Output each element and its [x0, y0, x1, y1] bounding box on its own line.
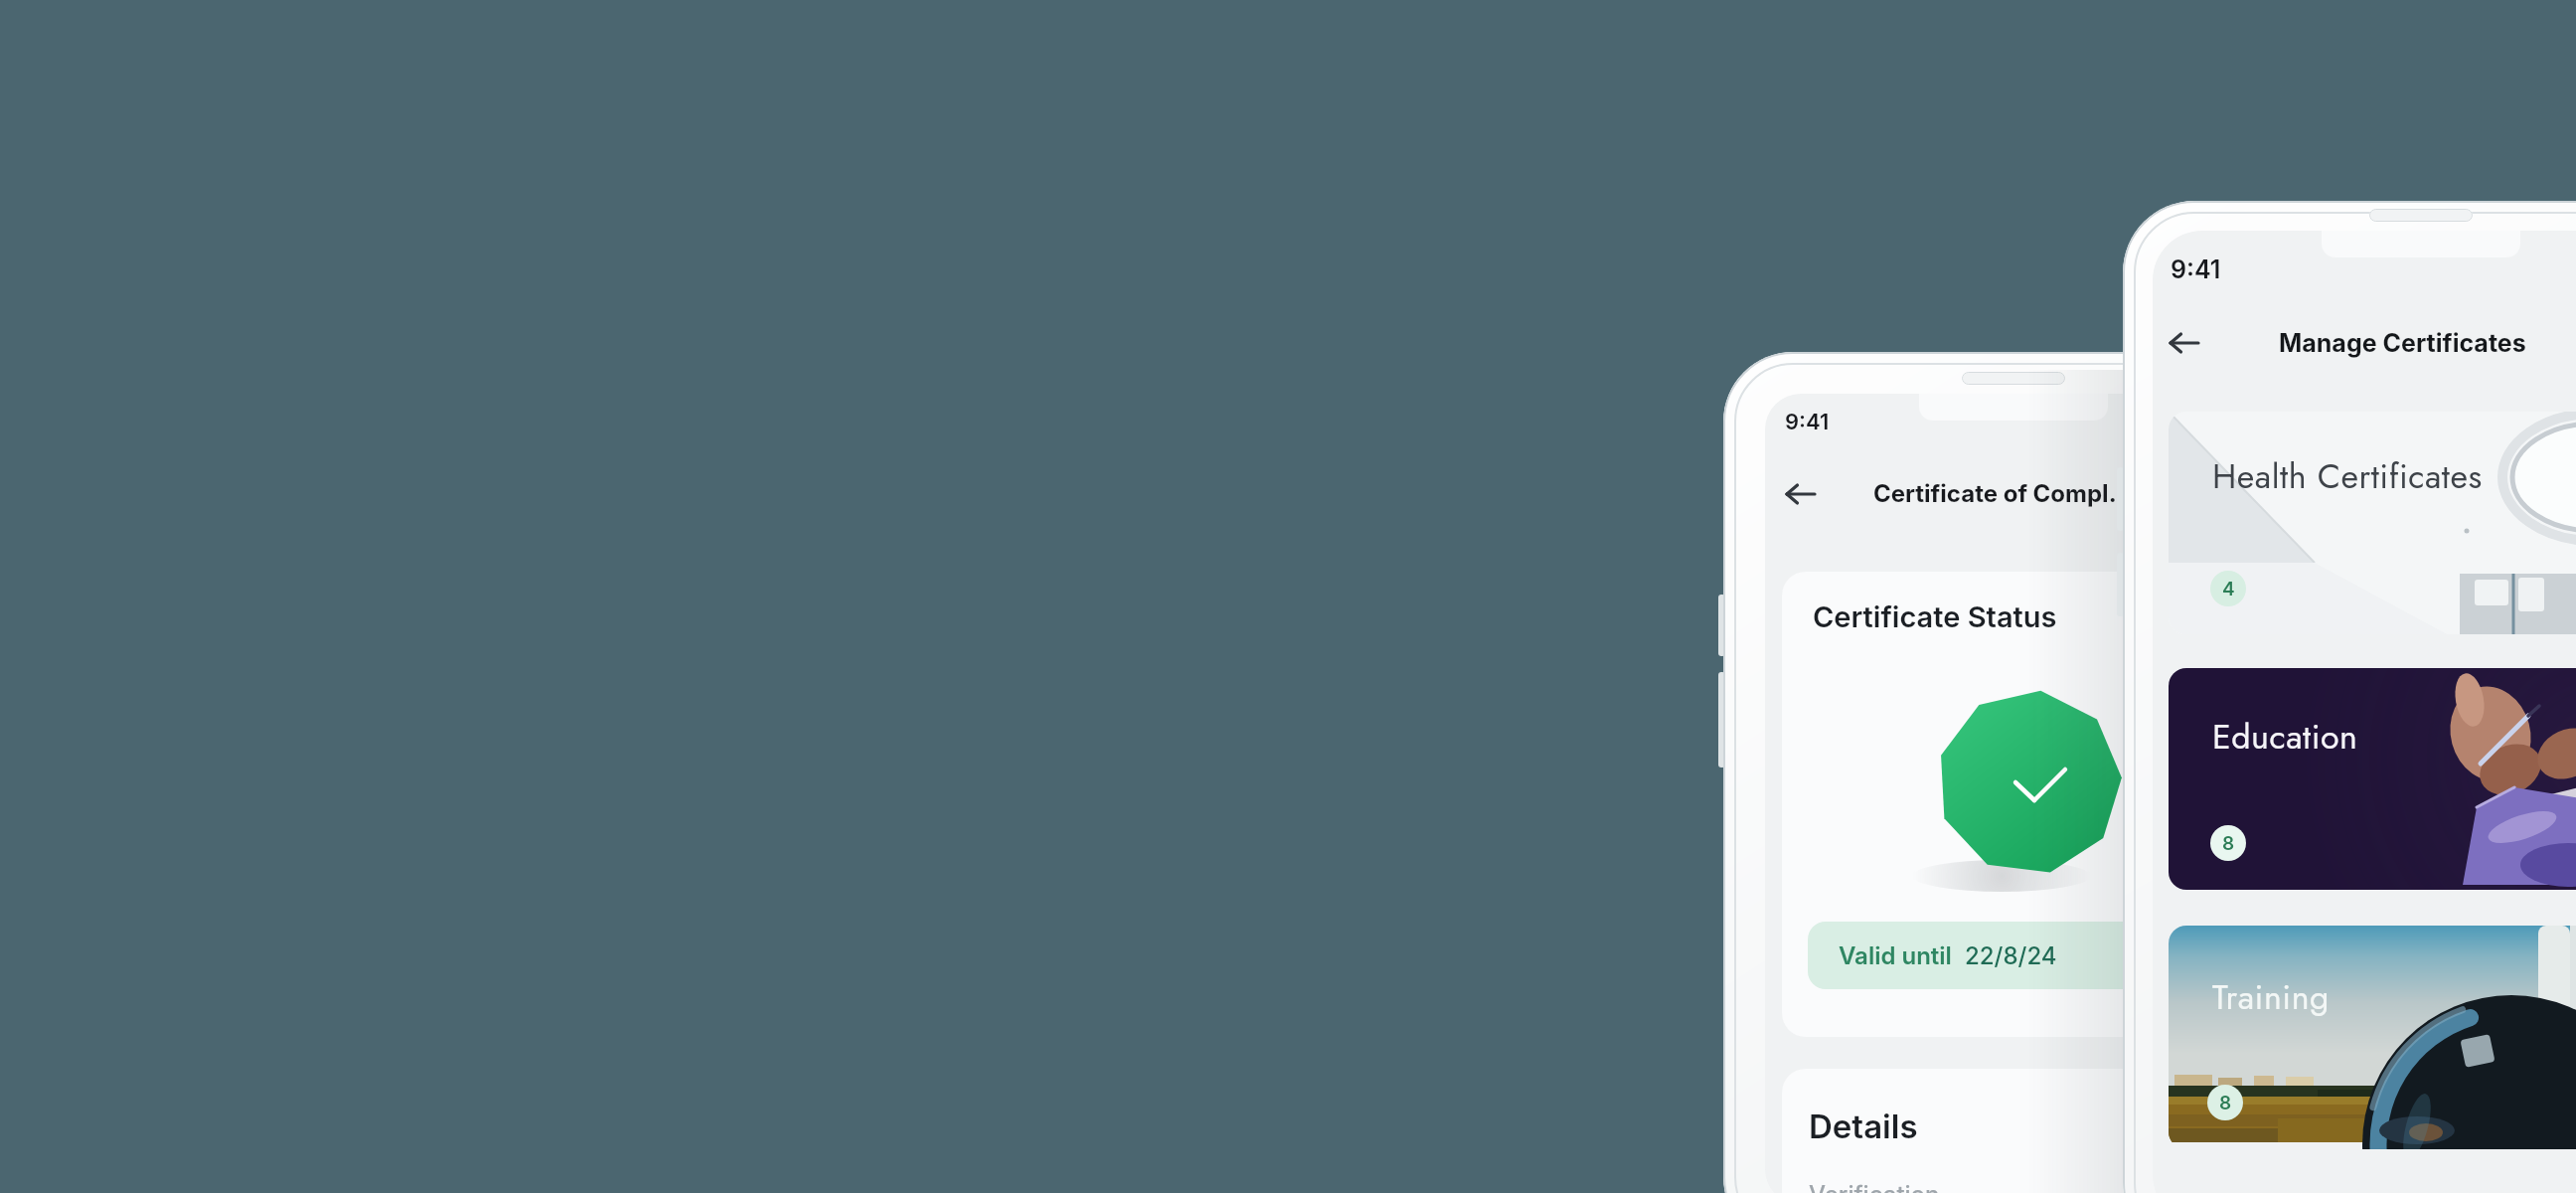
- staticText: 9:41: [2171, 255, 2221, 284]
- staticText: Education: [2212, 713, 2358, 762]
- staticText: 8: [2219, 1092, 2232, 1114]
- staticText: 9:41: [1785, 409, 1830, 435]
- staticText: Health Certificates: [2212, 452, 2483, 501]
- staticText: Valid until: [1839, 941, 1952, 970]
- staticText: 22/8/24: [1965, 941, 2057, 970]
- staticText: Manage Certificates: [2279, 328, 2526, 358]
- staticText: 4: [2222, 578, 2235, 600]
- staticText: Certificate of Compl...: [1873, 479, 2133, 508]
- staticText: Details: [1809, 1107, 1918, 1146]
- staticText: Training: [2212, 973, 2330, 1022]
- staticText: 8: [2222, 832, 2235, 855]
- staticText: Verification: [1809, 1180, 1940, 1193]
- staticText: Certificate Status: [1813, 599, 2057, 634]
